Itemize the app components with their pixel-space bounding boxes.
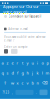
staticText: e	[11, 60, 13, 65]
staticText: ⇧	[3, 81, 6, 85]
staticText: n	[36, 80, 38, 85]
staticText: b	[31, 80, 33, 85]
staticText: z	[6, 60, 8, 65]
staticText: p	[46, 60, 48, 65]
staticText: l	[42, 70, 43, 75]
staticText: v	[26, 80, 28, 85]
staticText: k	[36, 70, 38, 75]
staticText: w	[11, 80, 14, 85]
staticText: f	[17, 70, 18, 75]
staticText: s	[6, 70, 8, 75]
staticText: d	[11, 70, 13, 75]
staticText: r	[16, 60, 18, 65]
staticText: j	[32, 70, 33, 75]
staticText: y	[26, 60, 28, 65]
staticText: Adresse e-mail	[8, 27, 28, 31]
staticText: i	[37, 60, 38, 65]
staticText: Connexion sur l'appareil	[9, 15, 42, 18]
staticText: Vous avez oublié votre adresse e-mail ?	[4, 35, 46, 42]
staticText: Créer un compte	[4, 45, 28, 49]
staticText: x	[16, 80, 18, 85]
staticText: o	[41, 60, 43, 65]
staticText: t	[22, 60, 23, 65]
staticText: Appuyez sur Oui sur votre appareil	[3, 4, 39, 14]
staticText: h	[26, 70, 28, 75]
staticText: .	[36, 91, 37, 94]
staticText: q	[1, 70, 3, 75]
staticText: m	[45, 70, 49, 75]
staticText: u	[31, 60, 33, 65]
staticText: ,	[12, 91, 13, 94]
staticText: a	[1, 60, 3, 65]
staticText: ?123	[2, 91, 9, 94]
staticText: ⌫	[42, 81, 48, 85]
staticText: g	[21, 70, 23, 75]
staticText: c	[21, 80, 23, 85]
